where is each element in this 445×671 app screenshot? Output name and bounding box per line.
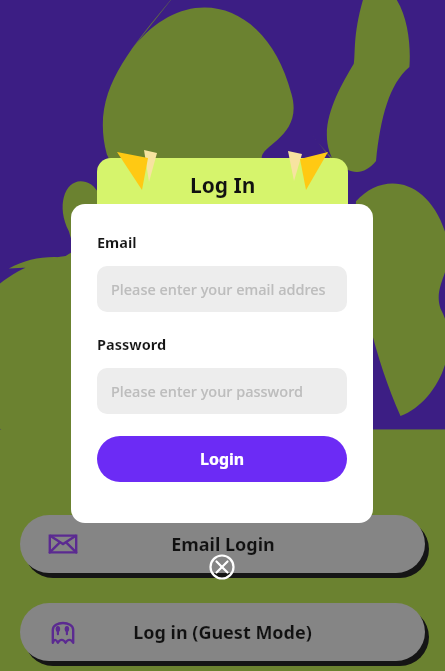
- button[interactable]: Log in (Guest Mode): [20, 603, 425, 661]
- button[interactable]: Please enter your email addres: [97, 266, 347, 312]
- staticText: Email Login: [171, 532, 275, 557]
- staticText: Password: [97, 334, 167, 354]
- staticText: Please enter your password: [111, 381, 303, 401]
- staticText: Log in (Guest Mode): [133, 620, 312, 645]
- button[interactable]: Close: [209, 554, 235, 580]
- button[interactable]: Please enter your password: [97, 368, 347, 414]
- staticText: Please enter your email addres: [111, 279, 326, 299]
- staticText: Log In: [190, 171, 256, 200]
- staticText: Login: [200, 448, 245, 470]
- button[interactable]: Email Login: [20, 515, 425, 573]
- button[interactable]: Login: [97, 436, 347, 482]
- staticText: Email: [97, 232, 137, 252]
